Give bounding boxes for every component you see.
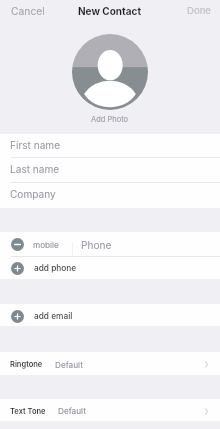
staticText: Last name (10, 163, 60, 175)
staticText: add phone (34, 263, 77, 273)
staticText: First name (10, 139, 61, 151)
staticText: Company (10, 188, 56, 200)
button[interactable]: Cancel (0, 0, 56, 22)
other: Remove phone (11, 238, 24, 251)
button[interactable]: add email (0, 305, 220, 327)
button[interactable]: First name (0, 134, 220, 158)
staticText: mobile (33, 240, 59, 250)
staticText: add email (34, 311, 73, 321)
staticText: New Contact (78, 5, 142, 17)
staticText: Done (187, 5, 211, 17)
staticText: Phone (81, 239, 112, 251)
button[interactable]: Remove phone (0, 232, 220, 257)
staticText: Text Tone (10, 407, 46, 416)
button[interactable]: add phone (0, 257, 220, 279)
button[interactable]: Company (0, 183, 220, 209)
button[interactable]: Last name (0, 158, 220, 183)
staticText: Cancel (11, 5, 45, 17)
staticText: Ringtone (10, 360, 43, 369)
staticText: Default (58, 406, 86, 416)
staticText: Add Photo (91, 115, 129, 124)
staticText: Default (55, 360, 83, 370)
button[interactable]: Text Tone (0, 400, 220, 422)
button[interactable]: Ringtone (0, 353, 220, 376)
button[interactable]: Add Photo (72, 34, 148, 110)
button[interactable]: Done (176, 0, 220, 22)
